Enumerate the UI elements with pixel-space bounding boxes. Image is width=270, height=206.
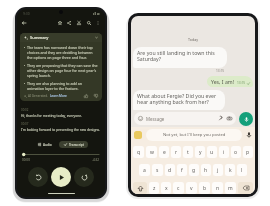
staticText: 13:16 xyxy=(216,112,225,116)
button[interactable]: Thumbs up xyxy=(84,94,88,98)
staticText: l xyxy=(241,167,243,174)
staticText: v xyxy=(190,185,193,192)
staticText: 9:30 xyxy=(23,11,30,16)
button[interactable]: Rewind 10 seconds xyxy=(28,167,48,187)
button[interactable]: Not yet, but I'll keep you posted xyxy=(146,129,242,141)
button[interactable]: Star xyxy=(55,18,64,27)
button[interactable]: x xyxy=(161,182,171,194)
staticText: o xyxy=(234,149,238,156)
staticText: b xyxy=(203,185,207,192)
staticText: What about Fergie? Did you ever hear any… xyxy=(137,92,221,106)
staticText: They are also planning to add an animati… xyxy=(27,81,98,91)
button[interactable]: c xyxy=(173,182,184,194)
staticText: Message xyxy=(146,116,165,122)
staticText: 00:02 xyxy=(21,108,29,112)
staticText: Summary xyxy=(30,35,49,40)
button[interactable]: v xyxy=(186,182,197,194)
button[interactable]: m xyxy=(225,182,236,194)
staticText: x xyxy=(165,185,168,192)
staticText: t xyxy=(187,149,189,156)
button[interactable]: g xyxy=(189,164,199,176)
staticText: j xyxy=(217,167,219,174)
staticText: I'm looking forward to presenting the ne… xyxy=(21,127,100,131)
button[interactable]: p xyxy=(243,146,253,158)
button[interactable]: w xyxy=(146,146,157,158)
button[interactable]: s xyxy=(152,164,163,176)
staticText: Today xyxy=(188,37,198,42)
button[interactable]: k xyxy=(225,164,235,176)
staticText: Learn More xyxy=(50,94,67,98)
button[interactable]: a xyxy=(139,164,150,176)
button[interactable]: Yes, I am! xyxy=(207,76,253,87)
button[interactable]: n xyxy=(212,182,223,194)
staticText: y xyxy=(199,149,202,156)
button[interactable]: Shift xyxy=(133,182,147,194)
button[interactable]: Emoji keyboard xyxy=(134,131,142,139)
button[interactable]: Transcript xyxy=(59,141,88,148)
staticText: -4:32 xyxy=(92,158,100,162)
staticText: AI Generated. xyxy=(28,94,49,98)
staticText: Yes, I am! xyxy=(211,78,235,85)
staticText: The team has narrowed down their top cho… xyxy=(27,45,98,60)
button[interactable]: z xyxy=(149,182,159,194)
staticText: d xyxy=(168,167,172,174)
staticText: 13:15 xyxy=(216,69,225,73)
staticText: 13:15 xyxy=(237,81,246,85)
button[interactable]: Summary xyxy=(20,33,102,101)
staticText: q xyxy=(137,149,141,156)
staticText: k xyxy=(229,167,232,174)
button[interactable]: o xyxy=(231,146,241,158)
staticText: Not yet, but I'll keep you posted xyxy=(163,132,226,138)
staticText: m xyxy=(228,185,233,192)
staticText: u xyxy=(210,149,214,156)
button[interactable]: j xyxy=(213,164,223,176)
staticText: a xyxy=(143,167,146,174)
staticText: They are proposing that they can save th… xyxy=(27,63,98,78)
staticText: f xyxy=(181,167,183,174)
button[interactable]: t xyxy=(183,146,193,158)
staticText: Are you still landing in town this Satur… xyxy=(137,49,223,63)
staticText: i xyxy=(223,149,225,156)
staticText: s xyxy=(156,167,159,174)
button[interactable]: u xyxy=(207,146,217,158)
staticText: Hi, thanks for meeting today, everyone. xyxy=(21,113,82,117)
staticText: r xyxy=(175,149,178,156)
button[interactable]: Back xyxy=(19,18,28,27)
button[interactable]: Forward 10 seconds xyxy=(74,167,94,187)
button[interactable]: Are you still landing in town this Satur… xyxy=(133,47,227,68)
staticText: Transcript xyxy=(69,143,84,147)
button[interactable]: d xyxy=(165,164,175,176)
button[interactable]: f xyxy=(177,164,187,176)
staticText: 00:07 xyxy=(21,122,29,126)
button[interactable]: Backspace xyxy=(238,182,253,194)
staticText: g xyxy=(192,167,196,174)
button[interactable]: What about Fergie? Did you ever hear any… xyxy=(133,90,225,111)
staticText: h xyxy=(204,167,208,174)
button[interactable]: Play xyxy=(51,167,71,187)
button[interactable]: h xyxy=(201,164,211,176)
staticText: w xyxy=(150,149,154,156)
button[interactable]: y xyxy=(195,146,205,158)
button[interactable]: Share xyxy=(64,18,73,27)
button[interactable]: Search xyxy=(84,18,93,27)
button[interactable]: e xyxy=(159,146,169,158)
staticText: c xyxy=(177,185,180,192)
staticText: e xyxy=(163,149,166,156)
button[interactable]: q xyxy=(133,146,144,158)
staticText: p xyxy=(246,149,250,156)
staticText: n xyxy=(216,185,220,192)
button[interactable]: Voice message xyxy=(239,112,253,126)
button[interactable]: More options xyxy=(93,18,102,27)
staticText: Audio xyxy=(43,143,52,147)
staticText: 00:00 xyxy=(22,158,30,162)
button[interactable]: Trim xyxy=(74,18,83,27)
button[interactable]: l xyxy=(237,164,247,176)
button[interactable]: i xyxy=(219,146,229,158)
button[interactable]: Message xyxy=(134,112,236,125)
staticText: z xyxy=(153,185,156,192)
button[interactable]: r xyxy=(171,146,181,158)
button[interactable]: Thumbs down xyxy=(94,94,98,98)
button[interactable]: Voice input xyxy=(246,132,252,138)
button[interactable]: b xyxy=(199,182,210,194)
button[interactable]: Audio xyxy=(34,141,55,148)
